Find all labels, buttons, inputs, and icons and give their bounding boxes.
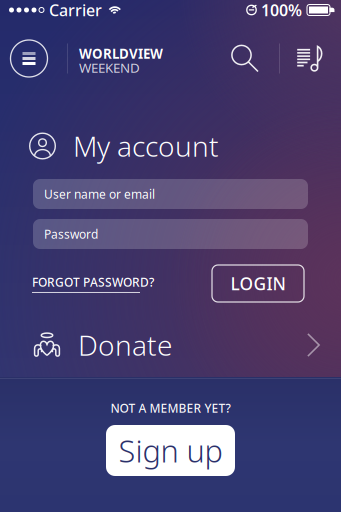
staticText: Donate bbox=[78, 326, 172, 364]
button[interactable]: Menu bbox=[9, 37, 49, 79]
button[interactable]: Donate bbox=[0, 324, 341, 366]
staticText: NOT A MEMBER YET? bbox=[110, 400, 230, 416]
staticText: Password bbox=[44, 226, 98, 242]
staticText: WORLDVIEW bbox=[79, 45, 163, 62]
button[interactable]: Playlists bbox=[296, 38, 324, 78]
button[interactable]: FORGOT PASSWORD? bbox=[32, 265, 152, 302]
staticText: LOGIN bbox=[230, 272, 285, 295]
button[interactable]: LOGIN bbox=[212, 265, 304, 302]
staticText: WEEKEND bbox=[79, 59, 140, 76]
button[interactable]: Sign up bbox=[106, 425, 235, 476]
button[interactable]: Search bbox=[223, 38, 267, 78]
staticText: Carrier bbox=[49, 0, 102, 21]
staticText: My account bbox=[73, 127, 219, 165]
staticText: User name or email bbox=[44, 186, 155, 202]
staticText: 100% bbox=[261, 0, 302, 21]
staticText: FORGOT PASSWORD? bbox=[32, 274, 154, 290]
staticText: Sign up bbox=[118, 430, 222, 471]
